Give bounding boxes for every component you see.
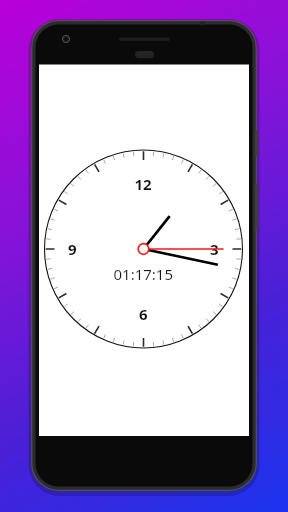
button[interactable]: Analog clock app on phone [0, 0, 288, 512]
